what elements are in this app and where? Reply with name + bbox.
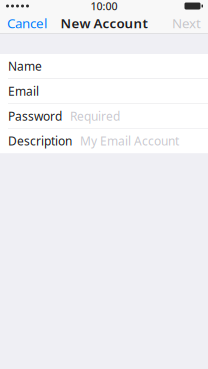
button[interactable]: Name	[0, 54, 208, 78]
button[interactable]: Cancel	[0, 12, 54, 34]
staticText: Name	[8, 58, 42, 74]
button[interactable]: Description	[0, 129, 208, 153]
staticText: New Account	[60, 14, 147, 32]
staticText: 10:00	[90, 0, 117, 13]
staticText: Required	[70, 108, 120, 124]
staticText: Email	[8, 83, 39, 99]
button[interactable]: Next	[165, 12, 208, 34]
staticText: Next	[172, 14, 201, 32]
button[interactable]: Password	[0, 104, 208, 128]
staticText: Password	[8, 108, 62, 124]
staticText: Cancel	[7, 14, 47, 32]
staticText: My Email Account	[80, 133, 179, 149]
button[interactable]: Email	[0, 79, 208, 103]
staticText: Description	[8, 133, 72, 149]
